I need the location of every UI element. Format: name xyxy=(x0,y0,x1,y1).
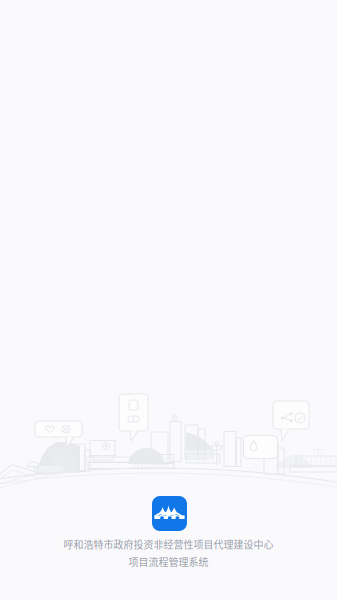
staticText: 项目流程管理系统 xyxy=(128,554,208,569)
staticText: 呼和浩特市政府投资非经营性项目代理建设中心 xyxy=(63,537,273,551)
